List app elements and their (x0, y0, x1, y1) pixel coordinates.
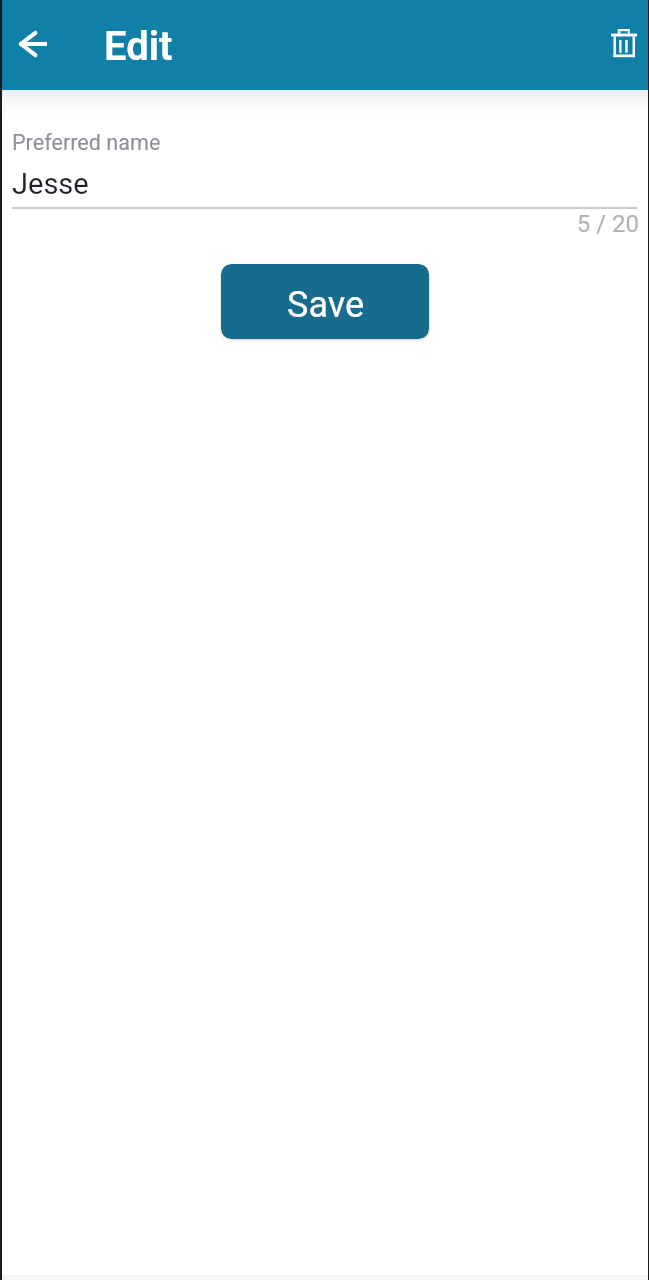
button[interactable]: Delete (597, 16, 649, 70)
button[interactable]: Save (221, 264, 429, 339)
staticText: Jesse (12, 167, 89, 201)
staticText: Preferred name (12, 130, 161, 155)
button[interactable]: Preferred name (12, 130, 637, 209)
staticText: Save (287, 284, 364, 326)
staticText: 5 / 20 (14, 210, 639, 238)
staticText: Edit (104, 23, 173, 70)
button[interactable]: Navigate back (4, 15, 62, 73)
